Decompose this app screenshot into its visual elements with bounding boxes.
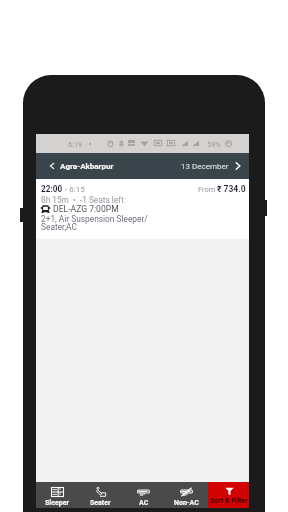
staticText: Agra-Akbarpur <box>60 162 114 171</box>
staticText: Seater,AC <box>41 222 77 232</box>
button[interactable]: Non-AC <box>165 482 208 508</box>
staticText: 8h 15m • -1 Seats left <box>41 195 124 205</box>
button[interactable]: Next day <box>233 161 243 171</box>
button[interactable]: Seater <box>79 482 122 508</box>
button[interactable]: Back <box>47 161 57 171</box>
staticText: AC <box>139 499 149 507</box>
staticText: 6:19 <box>68 140 83 149</box>
staticText: 59% <box>207 140 221 149</box>
staticText: 13 December <box>181 162 229 171</box>
staticText: Seater <box>90 499 111 507</box>
staticText: Sleeper <box>45 499 70 507</box>
staticText: 22:00 <box>41 184 63 194</box>
staticText: Non-AC <box>174 499 199 507</box>
button[interactable]: AC <box>122 482 165 508</box>
button[interactable]: Sleeper <box>36 482 79 508</box>
staticText: DEL-AZG 7:00PM <box>53 204 119 214</box>
staticText: From <box>198 185 217 194</box>
staticText: ₹ 734.0 <box>217 184 246 194</box>
staticText: - 6:15 <box>65 185 85 194</box>
staticText: 2+1, Air Suspension Sleeper/ <box>41 214 148 224</box>
button[interactable]: Sort & Filter <box>208 482 249 508</box>
staticText: Sort & Filter <box>210 497 248 505</box>
